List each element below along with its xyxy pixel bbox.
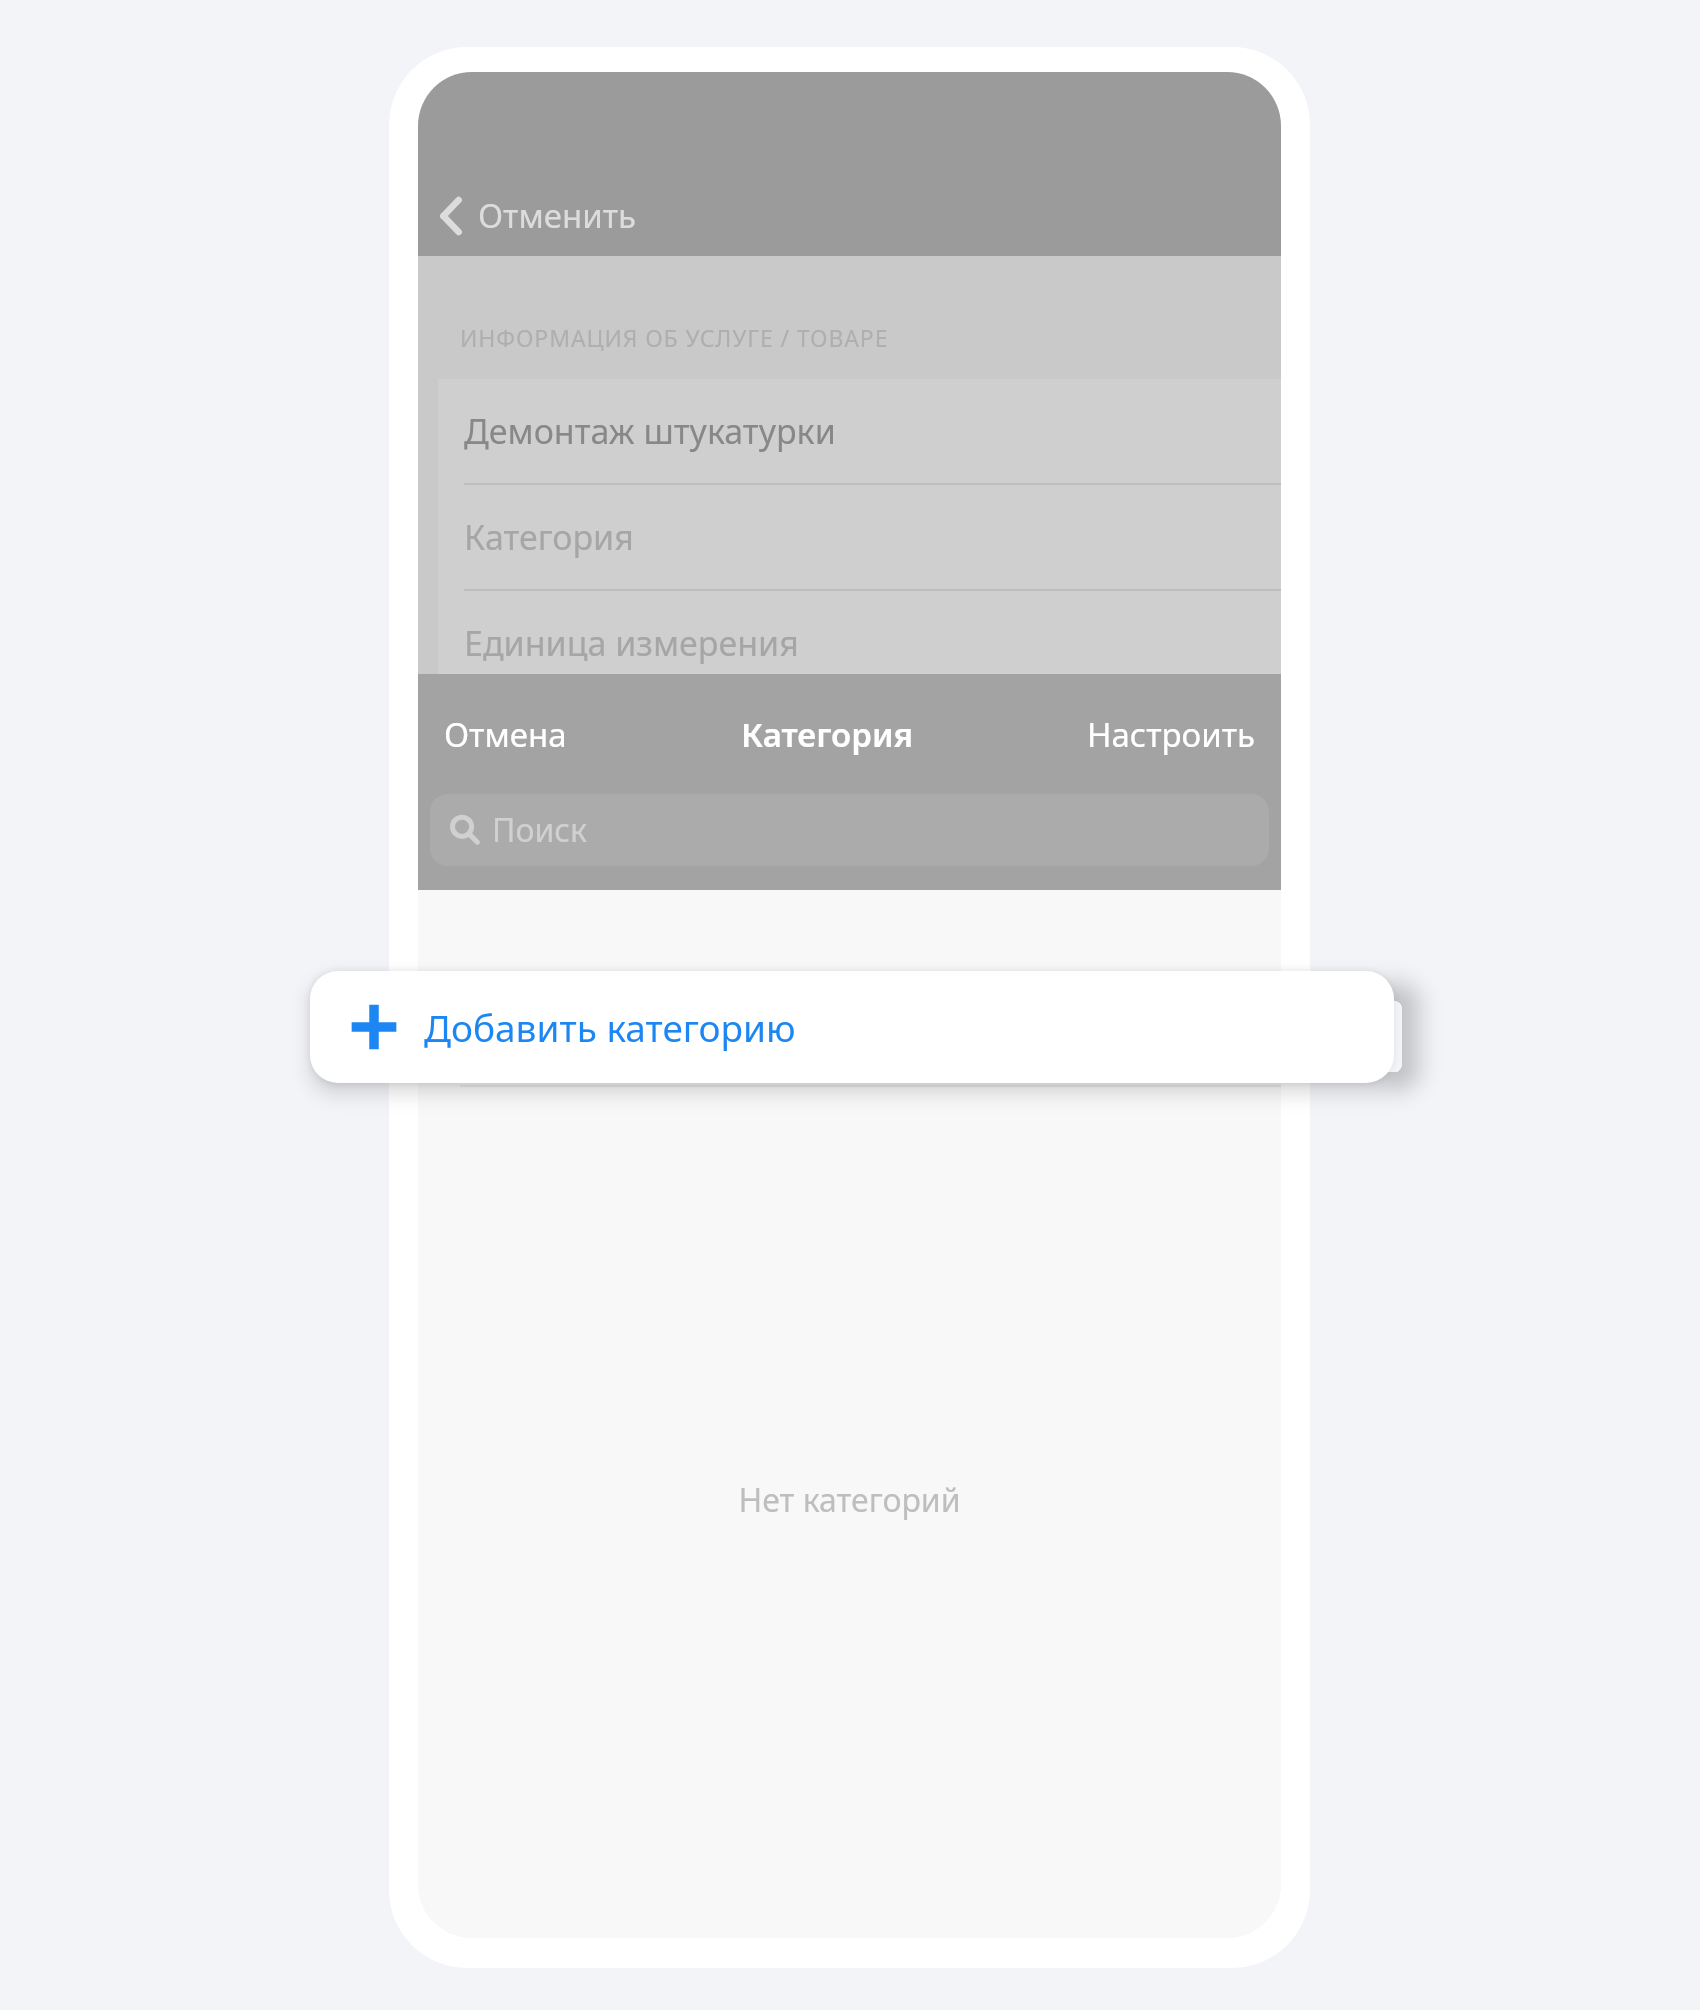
staticText: Категория: [741, 712, 914, 757]
button[interactable]: Демонтаж штукатурки: [438, 379, 1281, 483]
button[interactable]: Добавить категорию: [310, 971, 1394, 1083]
button[interactable]: Единица измерения: [438, 591, 1281, 695]
staticText: Демонтаж штукатурки: [464, 408, 836, 454]
button[interactable]: Категория: [438, 485, 1281, 589]
button[interactable]: Отменить: [426, 181, 651, 250]
staticText: Категория: [464, 514, 634, 560]
staticText: Отмена: [444, 712, 567, 757]
button[interactable]: Отмена: [418, 700, 583, 769]
staticText: Поиск: [492, 808, 588, 852]
staticText: Настроить: [1087, 712, 1255, 757]
staticText: ИНФОРМАЦИЯ ОБ УСЛУГЕ / ТОВАРЕ: [460, 322, 889, 353]
button[interactable]: Поиск: [430, 794, 1269, 866]
staticText: Нет категорий: [738, 1478, 961, 1522]
staticText: Отменить: [478, 193, 637, 238]
staticText: Добавить категорию: [424, 1002, 796, 1052]
button[interactable]: Настроить: [1071, 700, 1281, 769]
staticText: Единица измерения: [464, 620, 799, 666]
